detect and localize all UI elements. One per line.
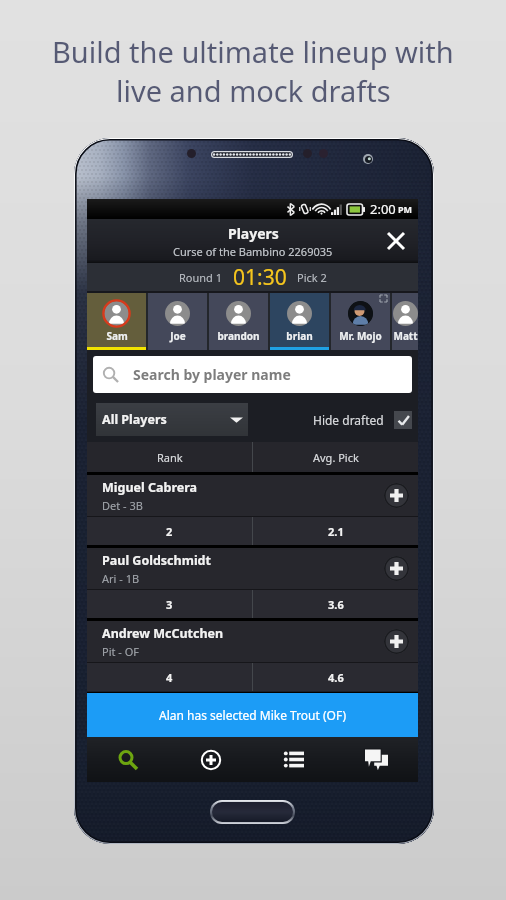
staticText: live and mock drafts — [116, 71, 391, 110]
staticText: Andrew McCutchen — [102, 625, 224, 642]
button[interactable]: brandon — [209, 293, 268, 350]
staticText: 2.1 — [328, 524, 344, 539]
staticText: Build the ultimate lineup with — [52, 32, 454, 71]
button[interactable]: Add Miguel Cabrera — [384, 483, 409, 508]
button[interactable]: Hide drafted — [313, 411, 412, 429]
staticText: All Players — [102, 411, 167, 428]
staticText: Ari - 1B — [102, 571, 140, 586]
staticText: Matt — [393, 329, 418, 343]
button[interactable]: List — [252, 737, 335, 782]
staticText: Players — [228, 224, 279, 243]
button[interactable]: Mr. Mojo — [331, 293, 390, 350]
staticText: Paul Goldschmidt — [102, 552, 211, 569]
staticText: Det - 3B — [102, 498, 143, 513]
staticText: 4.6 — [328, 670, 344, 685]
staticText: Pick 2 — [297, 270, 327, 285]
staticText: Round 1 — [179, 270, 223, 285]
staticText: Rank — [157, 450, 183, 465]
staticText: 01:30 — [233, 263, 287, 291]
button[interactable]: Andrew McCutchen — [87, 621, 418, 662]
staticText: Sam — [106, 329, 128, 343]
staticText: Joe — [170, 329, 186, 343]
staticText: brandon — [217, 329, 260, 343]
staticText: PM — [398, 203, 413, 215]
button[interactable]: Add — [169, 737, 252, 782]
button[interactable]: Search — [87, 737, 169, 782]
staticText: Search by player name — [133, 365, 291, 384]
button[interactable]: Search by player name — [93, 356, 412, 393]
staticText: Miguel Cabrera — [102, 479, 198, 496]
button[interactable]: brian — [270, 293, 329, 350]
button[interactable]: Sam — [87, 293, 146, 350]
button[interactable]: Alan has selected Mike Trout (OF) — [87, 693, 418, 737]
staticText: brian — [286, 329, 313, 343]
staticText: 2:00 — [370, 200, 396, 218]
staticText: Avg. Pick — [313, 450, 359, 465]
button[interactable]: Add Andrew McCutchen — [384, 629, 409, 654]
staticText: 3.6 — [328, 597, 344, 612]
button[interactable]: Matt — [392, 293, 418, 350]
staticText: 2 — [166, 524, 173, 539]
button[interactable]: All Players — [96, 403, 248, 436]
button[interactable]: Miguel Cabrera — [87, 475, 418, 516]
button[interactable]: Close — [374, 219, 418, 263]
button[interactable]: Joe — [148, 293, 207, 350]
staticText: Hide drafted — [313, 412, 384, 428]
button[interactable]: Add Paul Goldschmidt — [384, 556, 409, 581]
button[interactable]: Paul Goldschmidt — [87, 548, 418, 589]
staticText: 4 — [166, 670, 173, 685]
button[interactable]: Chat — [335, 737, 418, 782]
staticText: Mr. Mojo — [339, 329, 382, 343]
staticText: Pit - OF — [102, 644, 140, 659]
staticText: Curse of the Bambino 2269035 — [173, 244, 333, 259]
staticText: Alan has selected Mike Trout (OF) — [159, 707, 347, 723]
staticText: 3 — [166, 597, 173, 612]
